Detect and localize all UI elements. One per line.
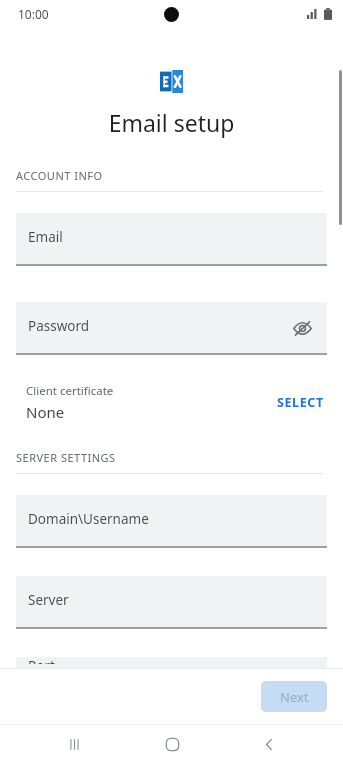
staticText: Next xyxy=(280,688,309,706)
button[interactable]: Show password xyxy=(287,313,317,343)
button[interactable]: Back xyxy=(245,724,293,764)
staticText: None xyxy=(26,402,65,422)
staticText: SERVER SETTINGS xyxy=(16,450,116,465)
staticText: Client certificate xyxy=(26,383,114,399)
button[interactable]: Domain\Username xyxy=(16,495,327,548)
staticText: SELECT xyxy=(277,394,324,411)
button[interactable]: Port xyxy=(16,657,327,668)
staticText: Password xyxy=(28,317,90,335)
button[interactable]: Server xyxy=(16,576,327,629)
staticText: ACCOUNT INFO xyxy=(16,168,103,183)
button[interactable]: Email xyxy=(16,213,327,266)
button[interactable]: Recent apps xyxy=(50,724,98,764)
staticText: Email xyxy=(28,228,63,246)
button[interactable]: Next xyxy=(261,681,327,712)
button[interactable]: Password xyxy=(16,302,327,355)
staticText: 10:00 xyxy=(18,6,49,22)
staticText: Port xyxy=(28,657,55,664)
staticText: Domain\Username xyxy=(28,510,149,528)
button[interactable]: Client certificate xyxy=(0,383,343,422)
staticText: Server xyxy=(28,591,69,609)
staticText: Email setup xyxy=(0,107,343,138)
button[interactable]: Home xyxy=(148,724,196,764)
